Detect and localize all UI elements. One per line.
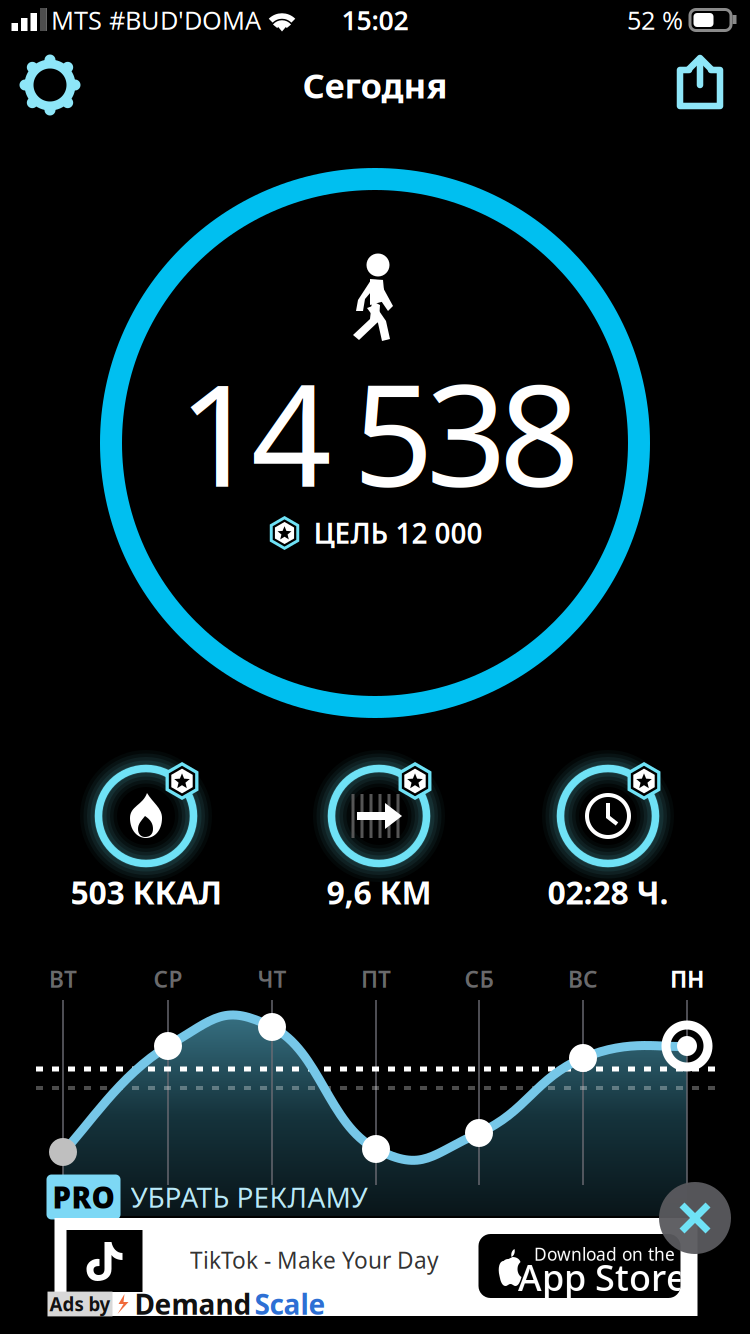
staticText: 02:28 Ч. xyxy=(547,871,668,913)
button[interactable]: Settings xyxy=(13,48,87,122)
staticText: Demand xyxy=(134,1285,251,1323)
staticText: 503 ККАЛ xyxy=(70,871,221,913)
staticText: App Store xyxy=(518,1253,687,1301)
button[interactable]: Close ad xyxy=(659,1182,731,1254)
staticText: 15:02 xyxy=(341,2,408,38)
button[interactable]: Share xyxy=(663,48,737,122)
staticText: 52 % xyxy=(627,3,683,37)
staticText: 14 538 xyxy=(178,338,580,526)
staticText: MTS #BUD'DOMA xyxy=(51,3,261,37)
staticText: ВС xyxy=(568,964,598,994)
staticText: Ads by xyxy=(49,1292,110,1316)
staticText: ВТ xyxy=(49,964,77,994)
staticText: Сегодня xyxy=(302,62,447,108)
staticText: ЧТ xyxy=(257,964,286,994)
staticText: PRO xyxy=(52,1177,114,1216)
staticText: ПН xyxy=(670,964,704,994)
staticText: Scale xyxy=(254,1285,325,1323)
staticText: Download on the xyxy=(534,1242,675,1265)
staticText: СБ xyxy=(464,964,493,994)
button[interactable]: PRO xyxy=(42,1168,371,1225)
staticText: ЦЕЛЬ 12 000 xyxy=(313,514,482,552)
staticText: УБРАТЬ РЕКЛАМУ xyxy=(130,1178,367,1216)
staticText: ПТ xyxy=(361,964,391,994)
staticText: 9,6 КМ xyxy=(326,871,431,913)
staticText: СР xyxy=(153,964,182,994)
staticText: TikTok - Make Your Day xyxy=(190,1245,439,1275)
